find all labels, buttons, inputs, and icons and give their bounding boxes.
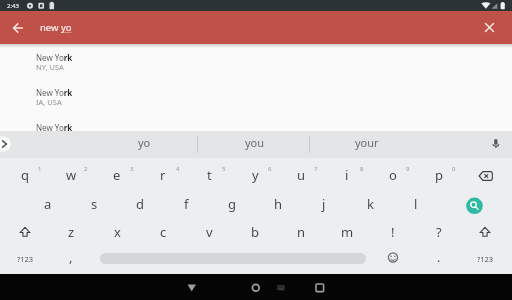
staticText: NY, USA	[36, 62, 64, 72]
button[interactable]: q	[3, 164, 47, 186]
staticText: n	[297, 223, 306, 241]
button[interactable]: you	[210, 131, 300, 153]
button[interactable]: a	[26, 193, 70, 215]
button[interactable]: b	[233, 221, 277, 243]
button[interactable]: t	[187, 164, 231, 186]
button[interactable]: ?	[417, 221, 461, 243]
button[interactable]: ?123	[3, 248, 47, 270]
button[interactable]: g	[210, 193, 254, 215]
button[interactable]: e	[95, 164, 139, 186]
button[interactable]: s	[72, 193, 116, 215]
staticText: h	[274, 195, 283, 213]
staticText: b	[251, 223, 259, 241]
button[interactable]: k	[348, 193, 392, 215]
staticText: .	[437, 248, 441, 266]
button[interactable]	[178, 274, 206, 300]
staticText: u	[297, 166, 306, 184]
staticText: 8	[360, 165, 364, 173]
staticText: New York	[36, 122, 73, 133]
staticText: 3	[130, 165, 134, 173]
staticText: ?123	[477, 254, 494, 264]
button[interactable]	[478, 16, 502, 40]
staticText: t	[207, 166, 212, 184]
button[interactable]: ,	[51, 246, 91, 268]
staticText: d	[136, 195, 144, 213]
button[interactable]: x	[95, 221, 139, 243]
button[interactable]: j	[302, 193, 346, 215]
staticText: q	[21, 166, 29, 184]
staticText: ?	[436, 223, 442, 241]
button[interactable]: f	[164, 193, 208, 215]
staticText: m	[341, 223, 354, 241]
button[interactable]: u	[279, 164, 323, 186]
staticText: f	[184, 195, 189, 213]
button[interactable]: n	[279, 221, 323, 243]
staticText: 2:43	[7, 2, 19, 10]
button[interactable]: l	[394, 193, 438, 215]
button[interactable]: i	[325, 164, 369, 186]
button[interactable]	[306, 274, 334, 300]
button[interactable]	[242, 274, 270, 300]
button[interactable]: c	[141, 221, 185, 243]
staticText: new yo	[40, 21, 72, 34]
staticText: r	[160, 166, 166, 184]
button[interactable]: p	[417, 164, 461, 186]
staticText: your	[355, 135, 379, 150]
staticText: ,	[69, 248, 73, 266]
staticText: you	[245, 135, 265, 150]
button[interactable]: .	[419, 246, 459, 268]
staticText: 2	[84, 165, 88, 173]
button[interactable]: your	[322, 131, 412, 153]
button[interactable]: h	[256, 193, 300, 215]
staticText: ?123	[17, 254, 34, 264]
staticText: !	[391, 223, 395, 241]
staticText: z	[68, 223, 75, 241]
staticText: New York	[36, 52, 73, 63]
staticText: 5	[222, 165, 226, 173]
button[interactable]: r	[141, 164, 185, 186]
staticText: 9	[406, 165, 410, 173]
button[interactable]: !	[371, 221, 415, 243]
button[interactable]: New York	[0, 86, 512, 119]
button[interactable]: v	[187, 221, 231, 243]
staticText: s	[91, 195, 98, 213]
staticText: v	[206, 223, 213, 241]
button[interactable]: z	[49, 221, 93, 243]
staticText: y	[252, 166, 259, 184]
button[interactable]: ?123	[463, 248, 507, 270]
staticText: i	[345, 166, 349, 184]
button[interactable]: New York	[0, 51, 512, 84]
staticText: l	[414, 195, 418, 213]
staticText: w	[66, 166, 77, 184]
button[interactable]: yo	[99, 131, 189, 153]
button[interactable]: New York	[0, 121, 512, 154]
staticText: a	[44, 195, 52, 213]
button[interactable]: d	[118, 193, 162, 215]
staticText: 4	[176, 165, 180, 173]
staticText: p	[435, 166, 443, 184]
button[interactable]: w	[49, 164, 93, 186]
staticText: g	[228, 195, 236, 213]
button[interactable]: y	[233, 164, 277, 186]
staticText: e	[113, 166, 121, 184]
staticText: IA, USA	[36, 97, 62, 107]
button[interactable]: m	[325, 221, 369, 243]
button[interactable]: new yo	[40, 11, 160, 44]
staticText: c	[160, 223, 167, 241]
staticText: x	[114, 223, 121, 241]
staticText: j	[322, 195, 326, 213]
staticText: k	[367, 195, 374, 213]
staticText: o	[389, 166, 397, 184]
button[interactable]: o	[371, 164, 415, 186]
staticText: 7	[314, 165, 318, 173]
staticText: 6	[268, 165, 272, 173]
staticText: 0	[452, 165, 456, 173]
staticText: yo	[138, 135, 151, 150]
staticText: New York	[36, 87, 73, 98]
staticText: 1	[38, 165, 42, 173]
button[interactable]	[6, 16, 30, 40]
